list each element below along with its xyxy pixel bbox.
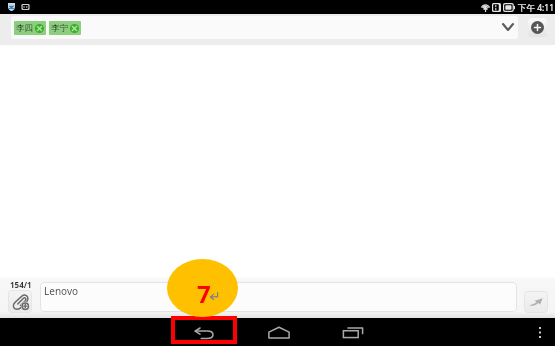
button[interactable]: Lenovo bbox=[40, 282, 517, 312]
staticText: 李四 bbox=[16, 23, 33, 34]
staticText: 下午 4:11 bbox=[518, 2, 555, 14]
button[interactable]: Attach file bbox=[8, 290, 32, 313]
button[interactable]: Back bbox=[171, 316, 237, 344]
staticText: Lenovo bbox=[44, 284, 79, 298]
staticText: 李宁 bbox=[51, 23, 68, 34]
button[interactable]: Send bbox=[524, 291, 548, 313]
button[interactable]: 李四 bbox=[14, 21, 46, 35]
button[interactable]: More options bbox=[533, 323, 547, 341]
button[interactable]: Add recipient bbox=[528, 18, 547, 37]
button[interactable]: 李四 bbox=[11, 16, 518, 39]
button[interactable]: Home bbox=[248, 319, 310, 346]
button[interactable]: Recent apps bbox=[322, 319, 384, 346]
staticText: 7 bbox=[197, 277, 211, 310]
staticText: 154/1 bbox=[10, 279, 32, 290]
button[interactable]: 李宁 bbox=[49, 21, 81, 35]
